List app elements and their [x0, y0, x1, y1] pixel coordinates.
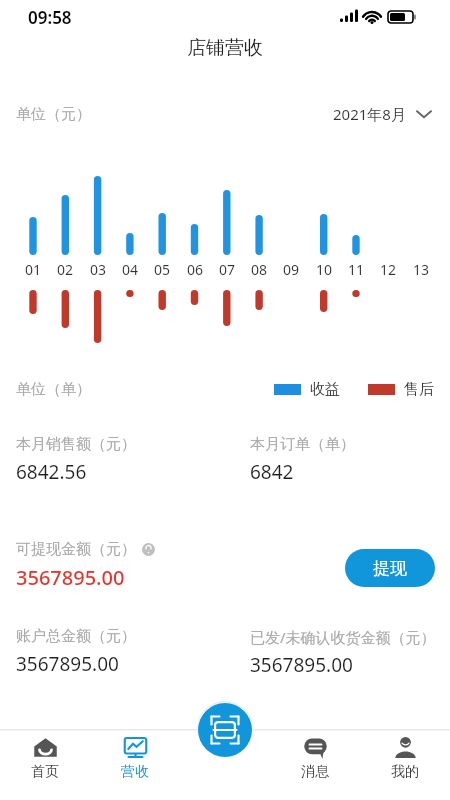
button[interactable]: 我的 [360, 731, 450, 791]
staticText: 本月订单（单） [250, 435, 355, 454]
staticText: 11 [348, 260, 365, 279]
staticText: 提现 [373, 558, 407, 579]
button[interactable]: Help [142, 543, 155, 556]
staticText: 营收 [121, 763, 149, 781]
staticText: 06 [187, 260, 204, 279]
staticText: 可提现金额（元） [16, 540, 136, 559]
button[interactable]: 2021年8月 [329, 102, 436, 126]
staticText: 3567895.00 [250, 652, 353, 678]
staticText: 收益 [310, 380, 340, 399]
staticText: 消息 [301, 763, 329, 781]
staticText: 售后 [404, 380, 434, 399]
staticText: 我的 [391, 763, 419, 781]
staticText: 3567895.00 [16, 564, 125, 591]
button[interactable]: 消息 [270, 731, 360, 791]
staticText: 05 [154, 260, 171, 279]
button[interactable]: Scan [198, 703, 252, 757]
staticText: 09 [283, 260, 300, 279]
staticText: 账户总金额（元） [16, 627, 136, 646]
staticText: 10 [316, 260, 333, 279]
staticText: 04 [122, 260, 139, 279]
staticText: 首页 [31, 763, 59, 781]
button[interactable]: 提现 [345, 549, 435, 587]
staticText: 单位（元） [16, 105, 91, 124]
staticText: 店铺营收 [187, 36, 263, 60]
staticText: 3567895.00 [16, 651, 119, 677]
staticText: 02 [57, 260, 74, 279]
staticText: 12 [380, 260, 397, 279]
staticText: 单位（单） [16, 380, 91, 399]
staticText: 07 [219, 260, 236, 279]
staticText: 01 [25, 260, 42, 279]
staticText: 08 [251, 260, 268, 279]
button[interactable]: 首页 [0, 731, 90, 791]
staticText: 6842.56 [16, 459, 87, 485]
staticText: 6842 [250, 459, 294, 485]
button[interactable]: 营收 [90, 731, 180, 791]
staticText: 已发/未确认收货金额（元） [250, 627, 436, 647]
staticText: 09:58 [28, 6, 72, 29]
staticText: 13 [413, 260, 430, 279]
staticText: 2021年8月 [333, 104, 406, 124]
staticText: 03 [90, 260, 107, 279]
staticText: 本月销售额（元） [16, 435, 136, 454]
